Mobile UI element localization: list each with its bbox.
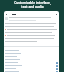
button[interactable] bbox=[5, 64, 58, 67]
button[interactable] bbox=[5, 55, 58, 58]
staticText: text and audio bbox=[21, 5, 44, 9]
button[interactable] bbox=[5, 67, 58, 70]
button[interactable] bbox=[5, 49, 58, 52]
button[interactable] bbox=[5, 58, 58, 61]
button[interactable] bbox=[5, 52, 58, 55]
button[interactable] bbox=[5, 61, 58, 64]
button[interactable] bbox=[5, 70, 58, 72]
staticText: Customizable interface, bbox=[14, 1, 51, 5]
